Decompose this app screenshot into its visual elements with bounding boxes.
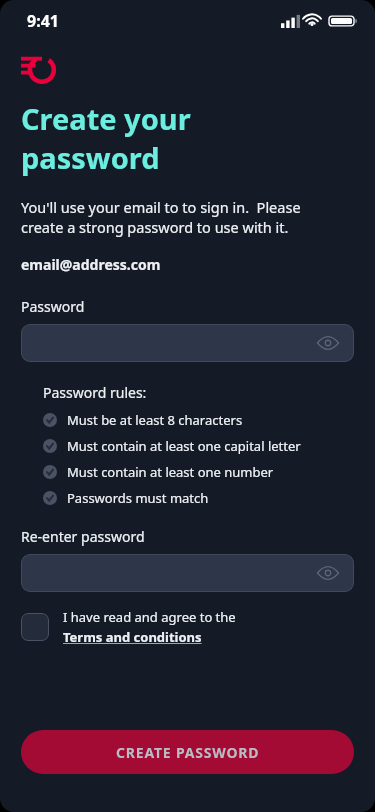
staticText: Password rules:: [43, 383, 147, 402]
staticText: I have read and agree to the: [63, 608, 236, 626]
button[interactable]: Show password: [316, 331, 340, 355]
button[interactable]: Must contain at least one number: [43, 463, 274, 481]
staticText: Terms and conditions: [63, 628, 202, 646]
button[interactable]: Agree to terms checkbox: [21, 613, 49, 641]
staticText: Must be at least 8 characters: [67, 411, 243, 429]
staticText: email@address.com: [21, 255, 161, 274]
button[interactable]: Show password: [316, 561, 340, 585]
staticText: Create your: [21, 99, 191, 138]
staticText: Must contain at least one capital letter: [67, 437, 301, 455]
staticText: CREATE PASSWORD: [116, 743, 260, 762]
button[interactable]: CREATE PASSWORD: [21, 730, 354, 774]
staticText: You'll use your email to to sign in. Ple…: [21, 197, 301, 217]
staticText: Must contain at least one number: [67, 463, 274, 481]
staticText: password: [21, 138, 160, 177]
button[interactable]: Must contain at least one capital letter: [43, 437, 301, 455]
other: Logo: [21, 52, 55, 83]
staticText: Passwords must match: [67, 489, 209, 507]
staticText: Re-enter password: [21, 527, 145, 546]
button[interactable]: I have read and agree to the: [63, 608, 236, 646]
button[interactable]: Passwords must match: [43, 489, 209, 507]
staticText: 9:41: [27, 10, 59, 32]
button[interactable]: Password input: [21, 324, 354, 362]
button[interactable]: Must be at least 8 characters: [43, 411, 243, 429]
staticText: create a strong password to use with it.: [21, 217, 289, 237]
button[interactable]: Re-enter password input: [21, 554, 354, 592]
staticText: Password: [21, 297, 85, 316]
